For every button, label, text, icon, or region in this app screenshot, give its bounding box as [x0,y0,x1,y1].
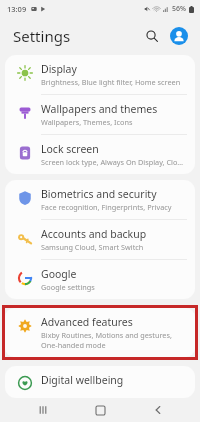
button[interactable]: Display [5,55,195,94]
staticText: Wallpapers, Themes, Icons [41,117,133,127]
button[interactable]: Recents [28,398,58,422]
button[interactable]: Lock screen [5,135,195,174]
staticText: Display [41,62,77,76]
staticText: Advanced features [41,315,133,329]
button[interactable]: Home [85,398,115,422]
button[interactable]: Biometrics and security [5,180,195,219]
button[interactable]: Digital wellbeing [5,366,195,398]
staticText: Biometrics and security [41,187,157,201]
staticText: Lock screen [41,142,99,156]
staticText: Face recognition, Fingerprints, Privacy [41,202,172,212]
staticText: One-handed mode [41,340,106,350]
staticText: 13:09 [7,4,27,14]
staticText: Wallpapers and themes [41,102,158,116]
button[interactable]: Account [166,23,192,49]
staticText: Google settings [41,282,95,292]
button[interactable]: Accounts and backup [5,220,195,259]
button[interactable]: Google [5,260,195,299]
staticText: Digital wellbeing [41,373,124,387]
staticText: 56% [172,4,186,14]
staticText: Bixby Routines, Motions and gestures, [41,330,172,340]
button[interactable]: Advanced features [5,308,195,357]
staticText: Samsung Cloud, Smart Switch [41,242,144,252]
staticText: Settings [13,26,71,46]
staticText: Brightness, Blue light filter, Home scre… [41,77,181,87]
staticText: Screen lock type, Always On Display, Clo… [41,157,185,167]
button[interactable]: Wallpapers and themes [5,95,195,134]
button[interactable]: Back [143,398,173,422]
button[interactable]: Search [140,24,164,48]
staticText: Google [41,267,77,281]
staticText: Accounts and backup [41,227,147,241]
